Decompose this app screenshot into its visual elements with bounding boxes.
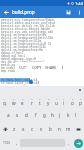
button[interactable]: s [13,108,22,122]
button[interactable]: 1 [0,94,9,108]
button[interactable]: CUT [15,62,30,73]
button[interactable]: m [64,122,73,136]
staticText: 2 [13,97,15,100]
staticText: k [67,112,70,118]
button[interactable]: c [28,122,37,136]
staticText: ?123 [3,141,10,145]
button[interactable]: ?123 [0,136,13,150]
staticText: debug.sf.hw=1 [1,51,24,55]
staticText: u [55,100,58,106]
staticText: COPY [32,65,42,70]
button[interactable]: z [10,122,19,136]
staticText: d [25,112,28,118]
button[interactable]: 6 [44,94,52,108]
staticText: w [12,100,16,106]
staticText: i [63,100,65,106]
button[interactable]: Save [62,6,74,18]
button[interactable]: 3 [18,94,27,108]
staticText: z [13,126,16,132]
button[interactable]: g [40,108,48,122]
staticText: 8 [63,97,65,100]
staticText: v [40,126,43,132]
button[interactable]: 4 [27,94,36,108]
staticText: dalvik.vm.heapsize=512m [1,39,41,43]
button[interactable]: h [48,108,56,122]
button[interactable]: x [19,122,28,136]
staticText: dalvik.vm.heapgrowthlimit=192m [1,36,54,40]
staticText: h [51,112,54,118]
staticText: persist.sys.timezone=Asia/Dubai [1,18,55,22]
staticText: a [7,112,10,118]
staticText: mmp.enable.3g2=true [1,69,34,73]
staticText: t [39,100,41,106]
button[interactable]: , [13,136,20,150]
button[interactable]: a [4,108,13,122]
button[interactable]: 5 [36,94,44,108]
staticText: 9 [72,97,74,100]
staticText: dalvik.vm.heaptargetutil=0.75 [1,42,52,46]
button[interactable]: l [72,108,80,122]
staticText: 4 [31,97,33,100]
staticText: debug.egl.hw=1 [1,54,26,58]
button[interactable]: More [58,62,66,73]
staticText: 7 [56,97,58,100]
staticText: m [66,126,71,132]
staticText: q [3,100,6,106]
staticText: persist.radio.multisim.conf=dsd [1,21,55,25]
button[interactable]: COPY [30,62,44,73]
staticText: 6 [48,97,50,100]
staticText: build.prop [12,9,35,15]
staticText: , [16,140,18,146]
button[interactable]: Keyboard settings [76,86,84,94]
staticText: b [49,126,52,132]
staticText: 3 [22,97,24,100]
button[interactable]: 9 [68,94,76,108]
staticText: dalvik.vm.heapminfree=512k [1,45,47,49]
button[interactable]: b [46,122,55,136]
button[interactable]: Shift [0,122,10,136]
staticText: persist.sys.usb.config=mtp,adb [1,30,54,34]
staticText: 0 [80,97,82,100]
staticText: . [68,140,70,146]
staticText: debug.mdpcomp.logs=0 [1,57,36,61]
staticText: 1 [4,97,6,100]
staticText: mm.enable.smoothstreaming [1,66,45,70]
staticText: dalvik.vm.heapmaxfree=8m [1,48,43,52]
staticText: ro.hwui.layer_cache=48 [1,81,40,85]
staticText: n [58,126,61,132]
button[interactable]: v [37,122,46,136]
staticText: persist.service.bdroid.bdadd [1,27,50,31]
staticText: ro.hwui.text_cache=16 [1,78,38,82]
staticText: o [71,100,74,106]
staticText: 5 [39,97,41,100]
button[interactable]: 2 [9,94,18,108]
staticText: e [21,100,24,106]
staticText: 1:44 [75,1,83,6]
staticText: l [75,112,77,118]
staticText: dev.pm.dyn_samplingrate=1 [1,60,45,64]
button[interactable]: d [22,108,31,122]
button[interactable]: 7 [52,94,60,108]
staticText: p [79,100,82,106]
staticText: s [16,112,19,118]
staticText: g [43,112,46,118]
button[interactable]: SHARE [44,62,58,73]
button[interactable]: More options [74,7,84,17]
staticText: CUT [19,65,26,70]
staticText: j [59,112,61,118]
button[interactable]: 8 [60,94,68,108]
staticText: persist.sys.dalvik.vm.lib.2=lib [1,24,55,28]
staticText: r [31,100,33,106]
button[interactable]: n [55,122,64,136]
button[interactable]: . [65,136,72,150]
button[interactable]: Back [0,6,12,18]
button[interactable]: k [64,108,72,122]
button[interactable]: Enter [72,136,84,150]
button[interactable]: Backspace [73,122,84,136]
button[interactable]: 0 [76,94,84,108]
button[interactable]: f [31,108,40,122]
staticText: c [31,126,34,132]
button[interactable]: j [56,108,64,122]
staticText: media.aac_51_output=true [1,63,43,67]
